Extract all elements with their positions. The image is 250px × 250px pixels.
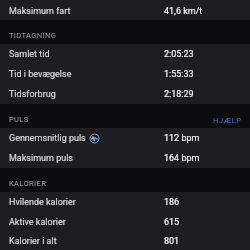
staticText: 2:05:23: [164, 49, 194, 60]
staticText: TIDTAGNING: [9, 31, 57, 40]
staticText: 801: [164, 236, 180, 247]
button[interactable]: Kalorier i alt: [0, 232, 250, 250]
other: Heart rate info: [89, 133, 100, 144]
staticText: 164 bpm: [164, 153, 200, 164]
staticText: 112 bpm: [164, 133, 200, 144]
button[interactable]: Tidsforbrug: [0, 84, 250, 104]
button[interactable]: Maksimum puls: [0, 148, 250, 168]
staticText: 2:18:29: [164, 89, 194, 100]
button[interactable]: Hvilende kalorier: [0, 192, 250, 212]
staticText: 41,6 km/t: [164, 6, 203, 17]
staticText: HJÆLP: [213, 116, 242, 125]
staticText: Maksimum fart: [9, 6, 71, 17]
button[interactable]: Maksimum fart: [0, 0, 250, 20]
button[interactable]: Gennemsnitlig puls: [0, 128, 250, 148]
staticText: 615: [164, 217, 180, 228]
staticText: Samlet tid: [9, 49, 50, 60]
staticText: Tidsforbrug: [9, 89, 56, 100]
button[interactable]: HJÆLP: [213, 116, 242, 125]
staticText: Aktive kalorier: [9, 217, 66, 228]
button[interactable]: Tid i bevægelse: [0, 64, 250, 84]
staticText: PULS: [9, 115, 29, 124]
staticText: Gennemsnitlig puls: [9, 133, 86, 144]
staticText: Hvilende kalorier: [9, 197, 76, 208]
staticText: Maksimum puls: [9, 153, 73, 164]
button[interactable]: Aktive kalorier: [0, 212, 250, 232]
staticText: 1:55:33: [164, 69, 194, 80]
staticText: KALORIER: [9, 179, 47, 188]
staticText: Tid i bevægelse: [9, 69, 72, 80]
button[interactable]: Samlet tid: [0, 44, 250, 64]
staticText: Kalorier i alt: [9, 236, 57, 247]
staticText: 186: [164, 197, 180, 208]
